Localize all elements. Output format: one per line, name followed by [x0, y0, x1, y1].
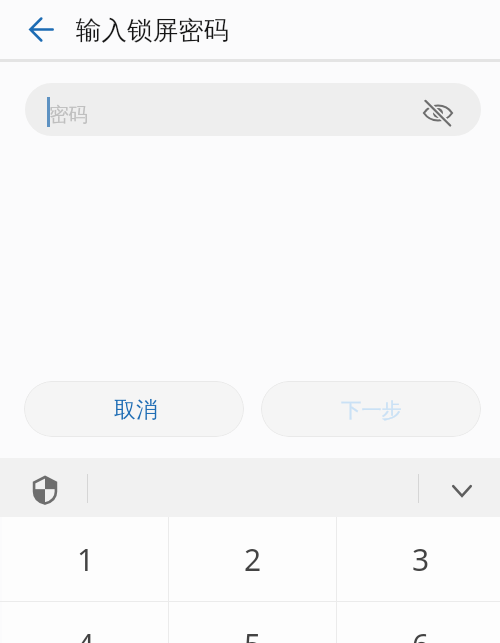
- button[interactable]: 4: [2, 602, 169, 643]
- button[interactable]: Back: [17, 5, 65, 53]
- staticText: 4: [77, 624, 95, 643]
- button[interactable]: Hide keyboard: [438, 467, 486, 515]
- staticText: 2: [244, 539, 262, 580]
- staticText: 密码: [49, 102, 88, 127]
- staticText: 取消: [114, 396, 158, 424]
- staticText: 5: [244, 624, 262, 643]
- button[interactable]: 密码: [25, 83, 481, 136]
- button[interactable]: Show password: [414, 89, 462, 136]
- button[interactable]: 3: [337, 517, 500, 601]
- button[interactable]: 2: [169, 517, 337, 601]
- staticText: 6: [412, 624, 430, 643]
- staticText: 下一步: [341, 398, 402, 423]
- button[interactable]: 1: [2, 517, 169, 601]
- staticText: 3: [412, 539, 430, 580]
- button[interactable]: 下一步: [261, 381, 481, 437]
- button[interactable]: 5: [169, 602, 337, 643]
- button[interactable]: 取消: [24, 381, 244, 437]
- staticText: 1: [77, 539, 95, 580]
- button[interactable]: 6: [337, 602, 500, 643]
- staticText: 输入锁屏密码: [76, 14, 229, 46]
- button[interactable]: Secure keyboard: [21, 466, 69, 514]
